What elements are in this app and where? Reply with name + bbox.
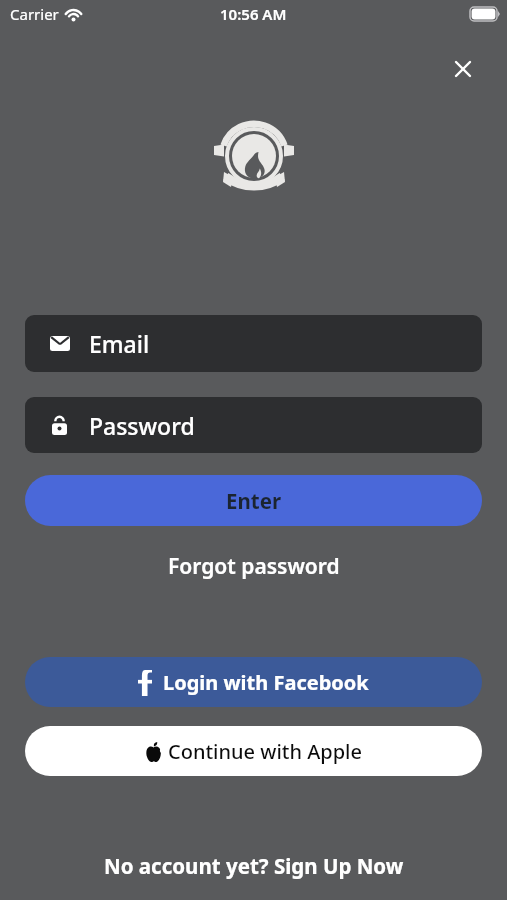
button[interactable]: Email (25, 315, 482, 372)
button[interactable]: Continue with Apple (25, 726, 482, 776)
staticText: Password (89, 410, 195, 441)
staticText: 10:56 AM (220, 4, 287, 24)
staticText: Continue with Apple (168, 738, 362, 765)
button[interactable]: Password (25, 397, 482, 453)
button[interactable]: No account yet? Sign Up Now (104, 852, 404, 880)
staticText: Carrier (10, 4, 59, 24)
staticText: Enter (226, 487, 282, 515)
button[interactable]: Login with Facebook (25, 657, 482, 707)
staticText: Email (89, 328, 150, 359)
staticText: Login with Facebook (163, 669, 369, 696)
button[interactable]: Forgot password (168, 552, 340, 581)
button[interactable]: Enter (25, 475, 482, 526)
button[interactable] (449, 55, 477, 83)
